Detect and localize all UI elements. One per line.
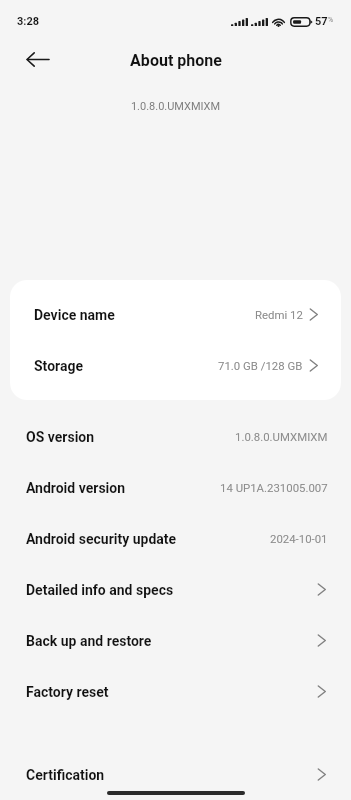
staticText: Certification — [26, 767, 105, 783]
staticText: Detailed info and specs — [26, 582, 174, 598]
staticText: Back up and restore — [26, 633, 152, 649]
button[interactable]: Storage — [10, 340, 341, 391]
staticText: 71.0 GB /128 GB — [218, 359, 303, 372]
button[interactable]: Factory reset — [0, 666, 351, 717]
button[interactable]: OS version — [0, 411, 351, 462]
staticText: 57 — [315, 15, 328, 28]
staticText: About phone — [130, 51, 222, 70]
staticText: OS version — [26, 429, 95, 445]
button[interactable]: Back up and restore — [0, 615, 351, 666]
staticText: 14 UP1A.231005.007 — [220, 481, 328, 494]
button[interactable]: Detailed info and specs — [0, 564, 351, 615]
staticText: Storage — [34, 358, 84, 374]
button[interactable]: Back — [20, 42, 56, 78]
staticText: 3:28 — [17, 15, 40, 28]
button[interactable]: Device name — [10, 289, 341, 340]
staticText: Redmi 12 — [255, 308, 303, 321]
staticText: Device name — [34, 307, 115, 323]
staticText: % — [328, 16, 334, 24]
button[interactable]: Android version — [0, 462, 351, 513]
staticText: 1.0.8.0.UMXMIXM — [235, 430, 328, 443]
staticText: Android version — [26, 480, 126, 496]
staticText: Factory reset — [26, 684, 109, 700]
staticText: 1.0.8.0.UMXMIXM — [0, 100, 351, 113]
staticText: Android security update — [26, 531, 177, 547]
staticText: 2024-10-01 — [270, 532, 328, 545]
button[interactable]: Certification — [0, 749, 351, 800]
button[interactable]: Android security update — [0, 513, 351, 564]
